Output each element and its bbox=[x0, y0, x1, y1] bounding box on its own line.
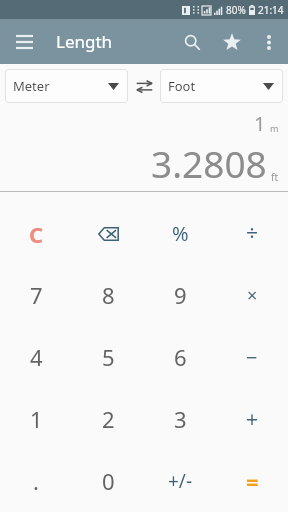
button[interactable]: 4 bbox=[0, 326, 72, 388]
button[interactable]: = bbox=[216, 450, 288, 512]
staticText: Length bbox=[56, 30, 113, 53]
button[interactable]: Favorite bbox=[212, 22, 252, 62]
button[interactable]: 9 bbox=[144, 264, 216, 326]
button[interactable]: 0 bbox=[72, 450, 144, 512]
staticText: . bbox=[33, 466, 39, 496]
staticText: 9 bbox=[174, 280, 187, 310]
button[interactable]: 8 bbox=[72, 264, 144, 326]
staticText: = bbox=[246, 466, 259, 496]
staticText: C bbox=[29, 219, 44, 249]
staticText: ft bbox=[271, 170, 279, 184]
button[interactable]: +/- bbox=[144, 450, 216, 512]
button[interactable]: 7 bbox=[0, 264, 72, 326]
button[interactable]: Open navigation menu bbox=[6, 24, 42, 60]
staticText: + bbox=[246, 405, 259, 434]
staticText: ÷ bbox=[246, 219, 259, 248]
staticText: 8 bbox=[102, 280, 115, 310]
button[interactable]: − bbox=[216, 326, 288, 388]
staticText: 3 bbox=[174, 404, 187, 434]
button[interactable]: 1 bbox=[0, 388, 72, 450]
staticText: 5 bbox=[102, 342, 115, 372]
staticText: 2 bbox=[102, 404, 115, 434]
staticText: 7 bbox=[30, 280, 43, 310]
button[interactable]: Meter bbox=[5, 69, 128, 103]
staticText: 6 bbox=[174, 342, 187, 372]
button[interactable]: . bbox=[0, 450, 72, 512]
button[interactable]: ÷ bbox=[216, 203, 288, 264]
staticText: +/- bbox=[168, 468, 193, 494]
staticText: 1 bbox=[254, 110, 266, 137]
staticText: Meter bbox=[13, 77, 50, 95]
staticText: × bbox=[247, 283, 258, 308]
button[interactable]: Backspace bbox=[72, 203, 144, 264]
button[interactable]: C bbox=[0, 203, 72, 264]
staticText: m bbox=[270, 122, 279, 134]
staticText: 4 bbox=[30, 342, 43, 372]
button[interactable]: 5 bbox=[72, 326, 144, 388]
staticText: Foot bbox=[168, 77, 196, 95]
staticText: 21:14 bbox=[258, 3, 284, 17]
button[interactable]: 3 bbox=[144, 388, 216, 450]
staticText: 3.2808 bbox=[151, 138, 267, 188]
button[interactable]: Search bbox=[172, 22, 212, 62]
button[interactable]: More options bbox=[252, 25, 286, 59]
staticText: − bbox=[246, 344, 258, 371]
staticText: 80% bbox=[226, 3, 246, 17]
button[interactable]: % bbox=[144, 203, 216, 264]
staticText: % bbox=[172, 220, 189, 247]
button[interactable]: 6 bbox=[144, 326, 216, 388]
button[interactable]: × bbox=[216, 264, 288, 326]
button[interactable]: 2 bbox=[72, 388, 144, 450]
button[interactable]: + bbox=[216, 388, 288, 450]
staticText: 1 bbox=[30, 404, 43, 434]
button[interactable]: Foot bbox=[160, 69, 283, 103]
staticText: 0 bbox=[102, 466, 115, 496]
button[interactable]: Swap units bbox=[128, 70, 160, 102]
